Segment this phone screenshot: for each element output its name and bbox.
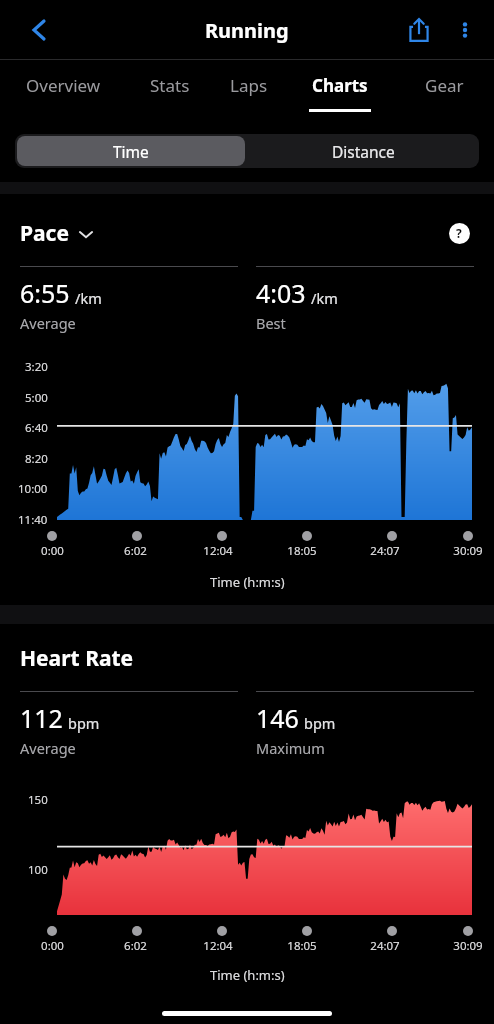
staticText: Average	[20, 738, 76, 758]
staticText: Stats	[150, 74, 190, 97]
staticText: 100	[28, 862, 48, 878]
staticText: Distance	[332, 141, 395, 162]
staticText: 18:05	[287, 543, 317, 559]
button[interactable]: More options	[442, 7, 488, 53]
button[interactable]: Back	[14, 7, 60, 53]
button[interactable]: Distance	[247, 134, 479, 168]
staticText: 150	[28, 792, 48, 808]
button[interactable]: Share	[396, 7, 442, 53]
staticText: ?	[456, 225, 462, 241]
staticText: Maximum	[256, 738, 325, 758]
staticText: 30:09	[453, 938, 483, 954]
staticText: 5:00	[25, 390, 48, 406]
button[interactable]: Stats	[123, 60, 217, 120]
staticText: 11:40	[18, 512, 48, 528]
button[interactable]: Overview	[16, 60, 110, 120]
staticText: 24:07	[370, 938, 400, 954]
button[interactable]: Help	[444, 218, 474, 248]
staticText: Time (h:m:s)	[210, 966, 285, 984]
staticText: Time	[113, 141, 149, 162]
staticText: Laps	[230, 74, 268, 97]
staticText: 4:03	[256, 276, 306, 310]
staticText: 24:07	[370, 543, 400, 559]
button[interactable]: Laps	[202, 60, 296, 120]
staticText: 3:20	[25, 359, 48, 375]
staticText: /km	[311, 288, 338, 308]
staticText: 12:04	[203, 938, 233, 954]
button[interactable]: Gear	[397, 60, 491, 120]
staticText: 6:02	[124, 938, 147, 954]
staticText: 6:02	[124, 543, 147, 559]
staticText: Time (h:m:s)	[210, 573, 285, 591]
staticText: 6:40	[25, 420, 48, 436]
button[interactable]: Charts	[293, 60, 387, 120]
staticText: Average	[20, 313, 76, 333]
staticText: 0:00	[41, 938, 64, 954]
staticText: 146	[256, 701, 299, 735]
staticText: 10:00	[18, 481, 48, 497]
staticText: Best	[256, 313, 286, 333]
staticText: 6:55	[20, 276, 70, 310]
staticText: Gear	[425, 74, 464, 97]
staticText: 30:09	[453, 543, 483, 559]
staticText: Pace	[20, 219, 69, 248]
staticText: Heart Rate	[20, 644, 134, 673]
staticText: bpm	[304, 713, 336, 733]
staticText: 18:05	[287, 938, 317, 954]
button[interactable]: Time	[17, 136, 245, 166]
staticText: /km	[75, 288, 102, 308]
staticText: 112	[20, 701, 63, 735]
staticText: Charts	[312, 74, 368, 97]
staticText: bpm	[68, 713, 100, 733]
staticText: 12:04	[203, 543, 233, 559]
staticText: Overview	[26, 74, 101, 97]
button[interactable]: Pace	[20, 219, 94, 248]
staticText: 8:20	[25, 451, 48, 467]
staticText: 0:00	[41, 543, 64, 559]
staticText: Running	[205, 17, 289, 44]
